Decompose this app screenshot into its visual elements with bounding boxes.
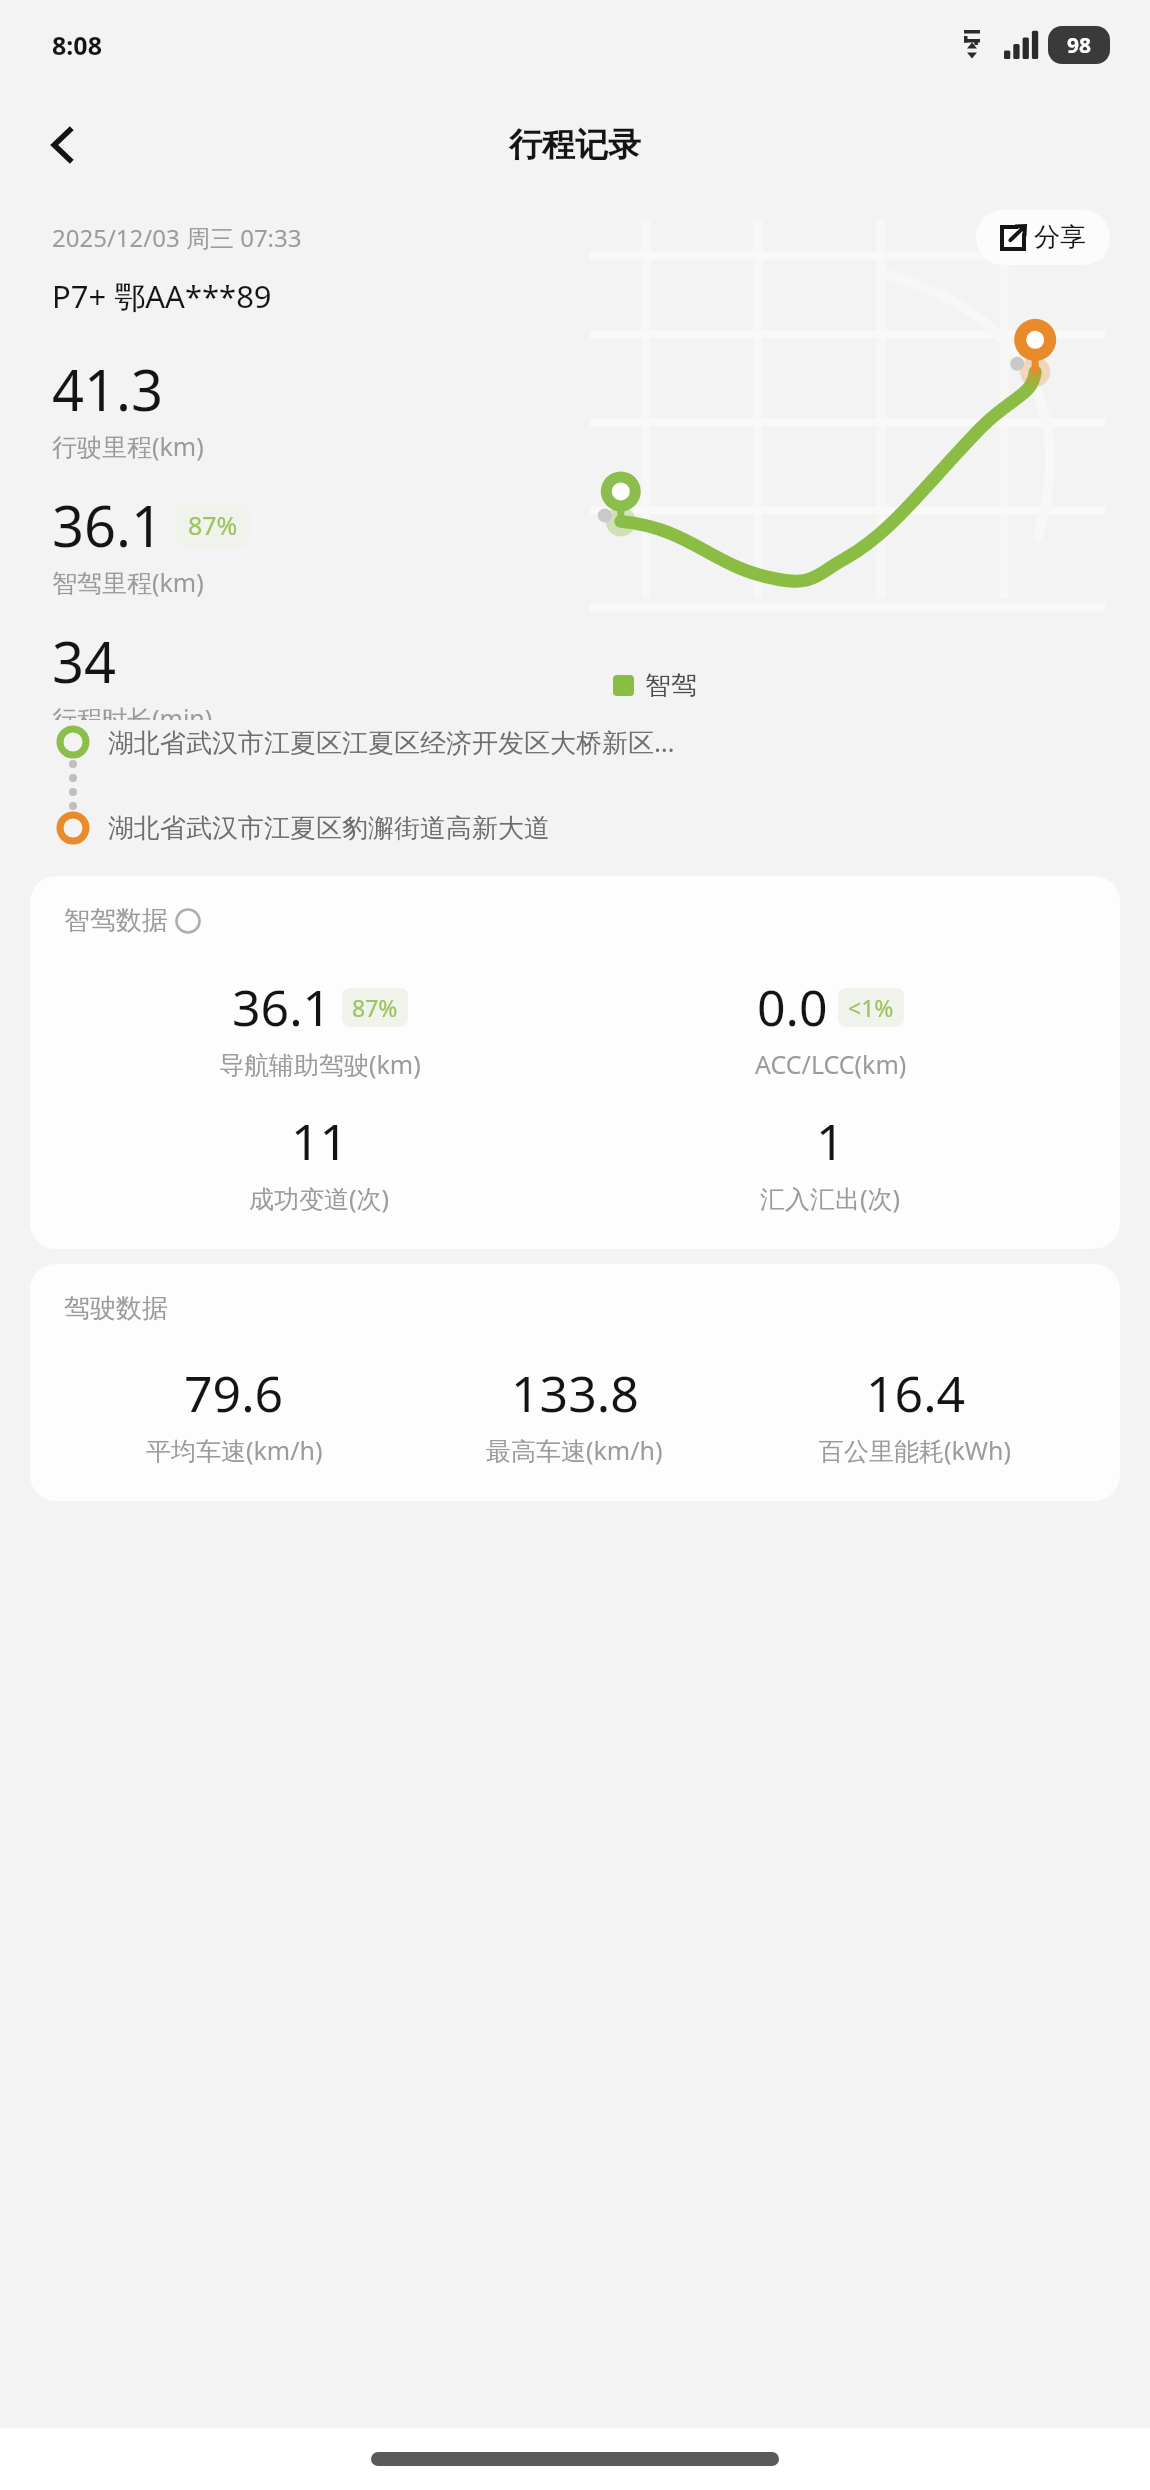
- staticText: 行程记录: [509, 124, 641, 166]
- staticText: 汇入汇出(次): [760, 1181, 901, 1215]
- staticText: 湖北省武汉市江夏区豹澥街道高新大道: [108, 812, 550, 845]
- staticText: 87%: [352, 992, 398, 1023]
- staticText: 87%: [188, 508, 238, 542]
- staticText: 平均车速(km/h): [146, 1433, 323, 1467]
- staticText: 智驾数据: [64, 904, 168, 937]
- staticText: 98: [1067, 31, 1092, 60]
- staticText: 智驾里程(km): [52, 565, 204, 599]
- staticText: 智驾: [645, 669, 697, 702]
- staticText: 湖北省武汉市江夏区江夏区经济开发区大桥新区…: [108, 724, 675, 760]
- staticText: 79.6: [184, 1359, 284, 1427]
- staticText: 行驶里程(km): [52, 429, 204, 463]
- button[interactable]: 分享: [976, 210, 1110, 265]
- staticText: 1: [816, 1107, 845, 1175]
- staticText: 导航辅助驾驶(km): [219, 1047, 421, 1081]
- staticText: 行程时长(min): [52, 701, 213, 720]
- staticText: 133.8: [511, 1359, 639, 1427]
- staticText: 0.0: [757, 973, 828, 1041]
- staticText: 驾驶数据: [64, 1292, 168, 1325]
- staticText: 36.1: [52, 487, 164, 563]
- staticText: 34: [52, 623, 117, 699]
- button[interactable]: 智驾数据: [64, 904, 201, 937]
- staticText: 36.1: [232, 973, 332, 1041]
- staticText: 8:08: [52, 28, 102, 62]
- staticText: 16.4: [866, 1359, 966, 1427]
- staticText: 百公里能耗(kWh): [819, 1433, 1012, 1467]
- staticText: 成功变道(次): [249, 1181, 390, 1215]
- staticText: 分享: [1034, 221, 1086, 254]
- staticText: 41.3: [52, 351, 164, 427]
- staticText: <1%: [848, 992, 894, 1023]
- staticText: 11: [291, 1107, 349, 1175]
- staticText: 2025/12/03 周三 07:33: [52, 221, 302, 254]
- button[interactable]: Back: [26, 108, 100, 182]
- staticText: 最高车速(km/h): [486, 1433, 663, 1467]
- staticText: ACC/LCC(km): [755, 1047, 907, 1081]
- staticText: P7+ 鄂AA***89: [52, 275, 272, 317]
